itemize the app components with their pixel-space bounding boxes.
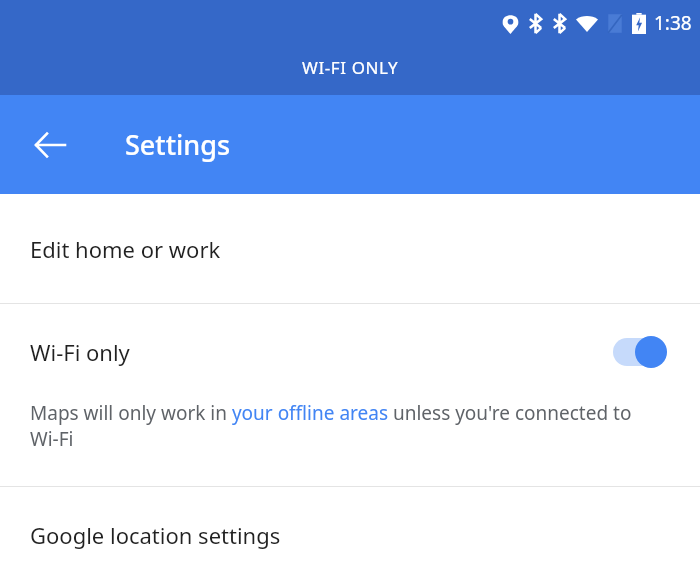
staticText: 1:38 xyxy=(654,10,692,36)
button[interactable]: Wi-Fi only toggle xyxy=(611,334,667,370)
button[interactable]: Edit home or work xyxy=(0,194,700,303)
staticText: Wi-Fi only xyxy=(30,337,130,367)
button[interactable]: Google location settings xyxy=(0,487,700,583)
button[interactable]: Wi-Fi only xyxy=(0,304,700,400)
staticText: Settings xyxy=(125,126,231,163)
staticText: Google location settings xyxy=(30,520,281,550)
staticText: Edit home or work xyxy=(30,234,221,264)
button[interactable]: Back xyxy=(22,117,78,173)
staticText: Maps will only work in your offline area… xyxy=(30,400,640,452)
staticText: WI-FI ONLY xyxy=(302,56,399,79)
